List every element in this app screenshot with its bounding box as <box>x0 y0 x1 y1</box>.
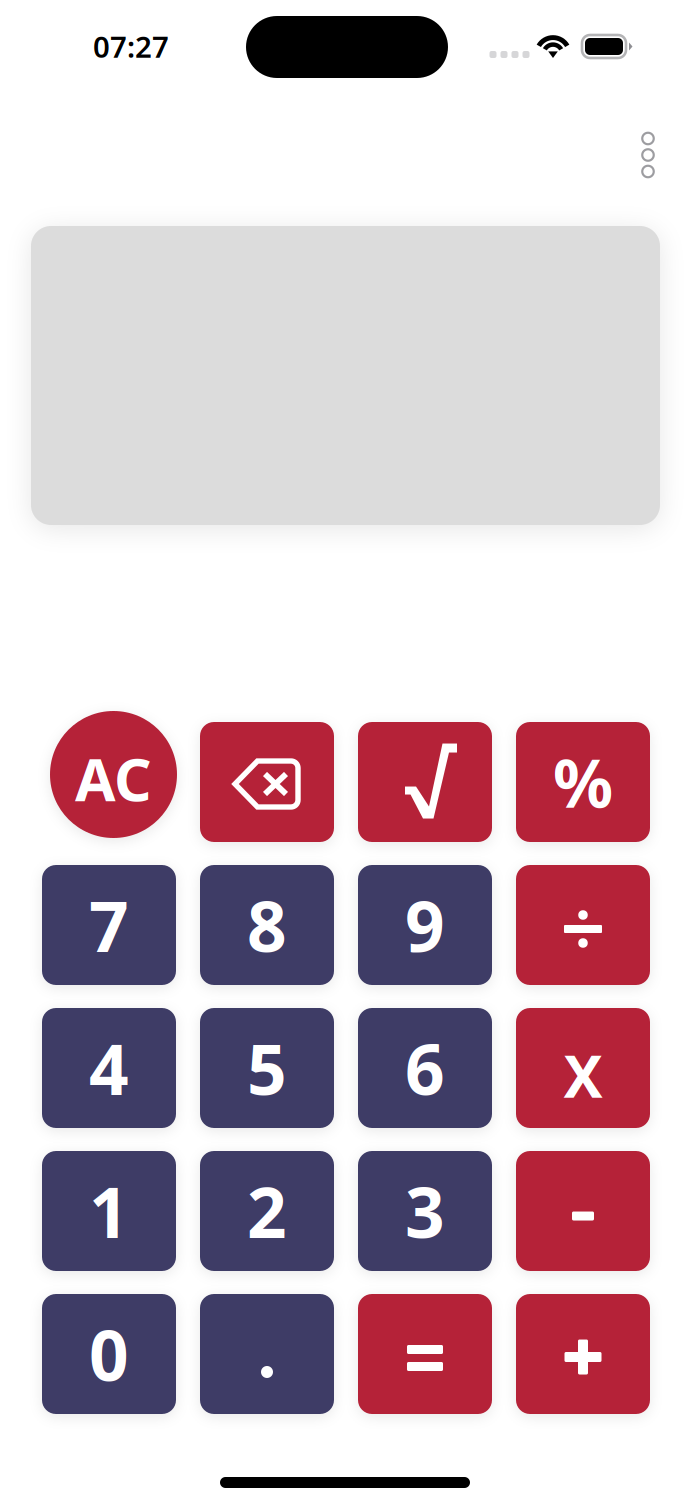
button[interactable]: 4 <box>42 1008 176 1128</box>
button[interactable]: % <box>516 722 650 842</box>
button[interactable]: 8 <box>200 865 334 985</box>
staticText: 8 <box>247 879 287 971</box>
button[interactable]: 2 <box>200 1151 334 1271</box>
button[interactable]: AC <box>42 722 176 842</box>
button[interactable]: 9 <box>358 865 492 985</box>
button[interactable]: 3 <box>358 1151 492 1271</box>
button[interactable]: Equals <box>358 1294 492 1414</box>
staticText: 5 <box>247 1022 287 1114</box>
button[interactable]: 1 <box>42 1151 176 1271</box>
staticText: 07:27 <box>93 27 169 66</box>
button[interactable]: 5 <box>200 1008 334 1128</box>
staticText: % <box>553 738 613 826</box>
button[interactable]: Square root <box>358 722 492 842</box>
staticText: AC <box>75 739 152 817</box>
button[interactable]: More options <box>624 124 672 186</box>
button[interactable]: 6 <box>358 1008 492 1128</box>
staticText: 2 <box>247 1165 287 1257</box>
button[interactable]: 7 <box>42 865 176 985</box>
button[interactable]: Plus <box>516 1294 650 1414</box>
staticText: X <box>563 1036 602 1114</box>
button[interactable]: Minus <box>516 1151 650 1271</box>
button[interactable]: 0 <box>42 1294 176 1414</box>
button[interactable]: X <box>516 1008 650 1128</box>
button[interactable]: Divide <box>516 865 650 985</box>
staticText: 9 <box>405 879 445 971</box>
staticText: 1 <box>89 1165 129 1257</box>
staticText: 7 <box>89 879 129 971</box>
staticText: 0 <box>89 1308 129 1400</box>
staticText: 6 <box>405 1022 445 1114</box>
staticText: 4 <box>89 1022 129 1114</box>
button[interactable]: Decimal point <box>200 1294 334 1414</box>
staticText: 3 <box>405 1165 445 1257</box>
button[interactable]: Delete <box>200 722 334 842</box>
